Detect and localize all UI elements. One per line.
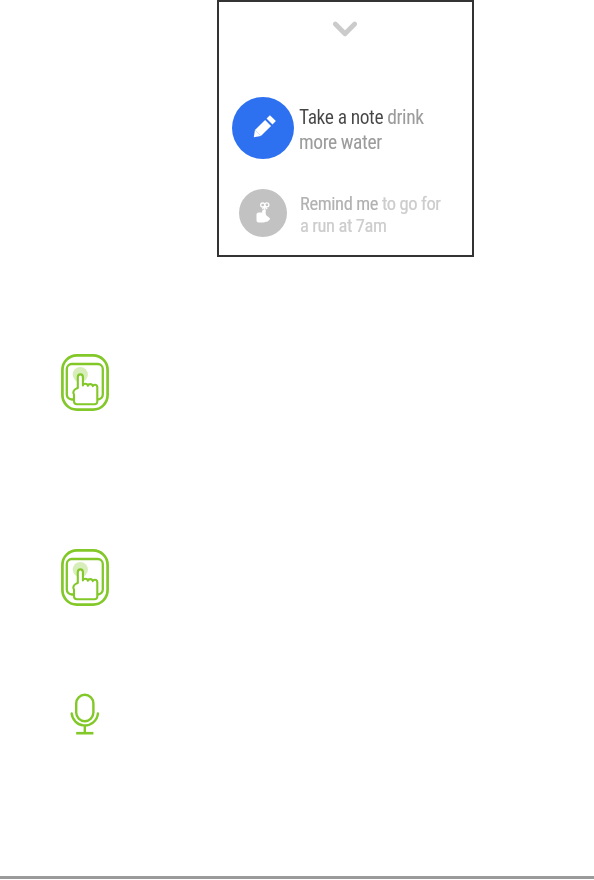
- staticText: more water: [299, 131, 382, 154]
- button[interactable]: [232, 185, 468, 245]
- staticText: Remind me to go for: [300, 193, 441, 215]
- button[interactable]: [67, 690, 103, 738]
- staticText: a run at 7am: [300, 215, 387, 237]
- button[interactable]: [330, 18, 360, 40]
- button[interactable]: [61, 549, 109, 606]
- staticText: Take a note drink: [299, 106, 424, 129]
- button[interactable]: [61, 354, 109, 411]
- button[interactable]: [228, 93, 468, 163]
